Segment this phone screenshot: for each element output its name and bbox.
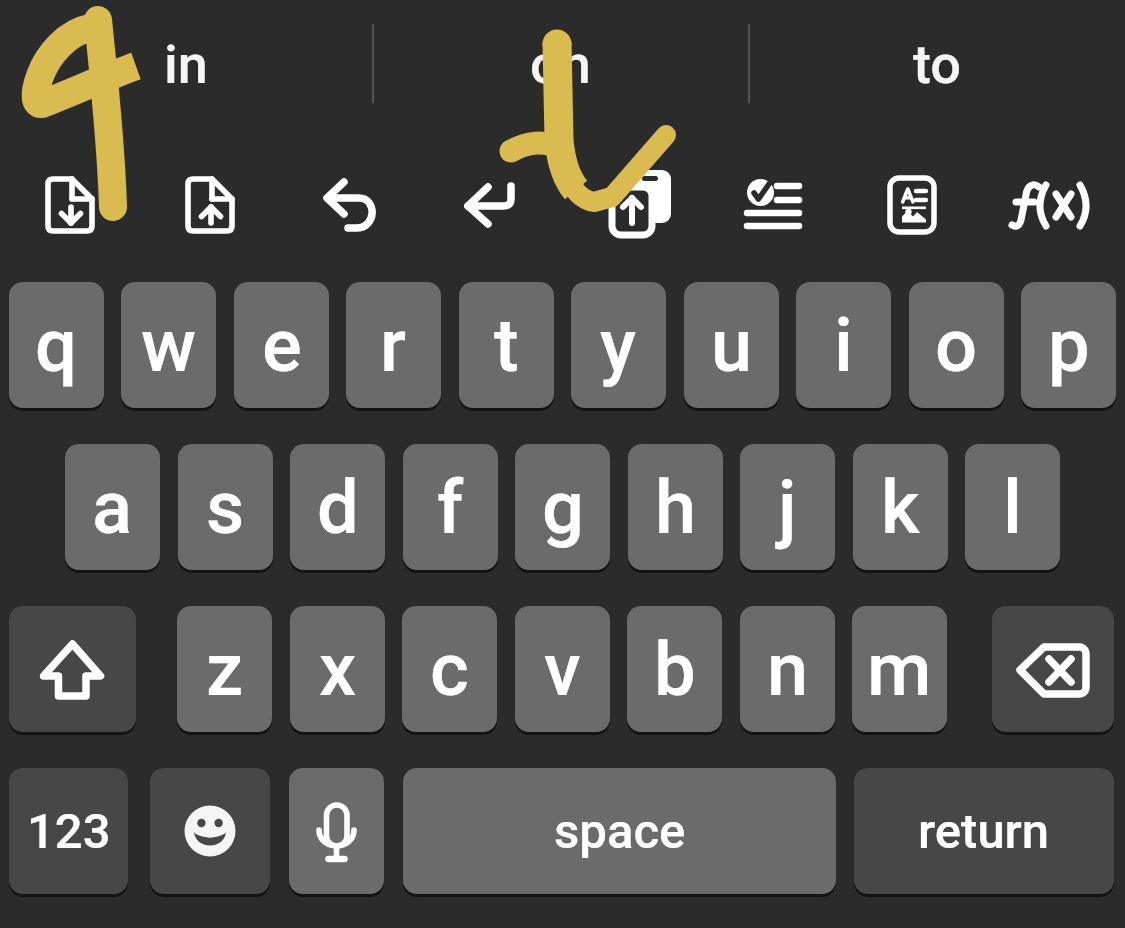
staticText: h (655, 464, 697, 551)
button[interactable]: Checklist (717, 150, 827, 260)
staticText: k (881, 464, 920, 551)
button[interactable]: e (234, 282, 329, 408)
staticText: f (437, 464, 464, 551)
button[interactable]: Undo (295, 150, 405, 260)
button[interactable]: s (178, 444, 273, 570)
staticText: d (317, 464, 359, 551)
staticText: r (380, 302, 407, 389)
staticText: 123 (27, 803, 111, 860)
button[interactable]: Export file (155, 150, 265, 260)
button[interactable]: to (749, 0, 1125, 128)
button[interactable]: d (290, 444, 385, 570)
button[interactable]: return (854, 768, 1114, 894)
staticText: t (494, 302, 519, 389)
button[interactable]: Rich content (857, 150, 967, 260)
staticText: on (530, 33, 591, 96)
button[interactable]: a (65, 444, 160, 570)
button[interactable]: z (177, 606, 272, 732)
staticText: x (319, 626, 357, 713)
staticText: j (778, 464, 797, 551)
staticText: in (164, 33, 208, 96)
button[interactable]: on (373, 0, 748, 128)
button[interactable]: f (403, 444, 498, 570)
button[interactable]: h (628, 444, 723, 570)
staticText: g (542, 464, 584, 551)
staticText: y (600, 302, 637, 389)
button[interactable]: l (965, 444, 1060, 570)
staticText: to (913, 33, 961, 96)
staticText: return (918, 803, 1050, 860)
button[interactable]: i (796, 282, 891, 408)
staticText: a (92, 464, 133, 551)
staticText: w (141, 302, 196, 389)
button[interactable]: y (571, 282, 666, 408)
button[interactable]: o (909, 282, 1004, 408)
staticText: q (35, 302, 78, 389)
button[interactable]: k (853, 444, 948, 570)
button[interactable]: n (740, 606, 835, 732)
staticText: b (654, 626, 696, 713)
staticText: s (206, 464, 245, 551)
button[interactable]: Voice input (289, 768, 384, 894)
button[interactable]: Emoji (150, 768, 270, 894)
button[interactable]: in (0, 0, 372, 128)
staticText: space (554, 803, 686, 860)
staticText: e (262, 302, 302, 389)
staticText: m (867, 626, 932, 713)
staticText: u (711, 302, 753, 389)
button[interactable]: space (403, 768, 836, 894)
staticText: v (544, 626, 581, 713)
button[interactable]: c (402, 606, 497, 732)
button[interactable]: 123 (9, 768, 128, 894)
button[interactable]: r (346, 282, 441, 408)
button[interactable]: j (740, 444, 835, 570)
button[interactable]: m (852, 606, 947, 732)
staticText: l (1003, 464, 1022, 551)
button[interactable]: w (121, 282, 216, 408)
button[interactable]: Copy to clipboard (575, 150, 685, 260)
button[interactable]: g (515, 444, 610, 570)
button[interactable]: p (1021, 282, 1116, 408)
button[interactable]: u (684, 282, 779, 408)
button[interactable]: v (515, 606, 610, 732)
button[interactable]: t (459, 282, 554, 408)
button[interactable]: Import file (15, 150, 125, 260)
button[interactable]: b (627, 606, 722, 732)
button[interactable]: Enter (435, 150, 545, 260)
staticText: o (935, 302, 978, 389)
staticText: n (767, 626, 809, 713)
button[interactable]: Shift (9, 606, 136, 732)
button[interactable]: q (9, 282, 104, 408)
staticText: i (834, 302, 853, 389)
button[interactable]: Formula (999, 150, 1109, 260)
staticText: p (1048, 302, 1090, 389)
staticText: c (430, 626, 469, 713)
button[interactable]: x (290, 606, 385, 732)
button[interactable]: Backspace (992, 606, 1114, 732)
staticText: z (206, 626, 244, 713)
